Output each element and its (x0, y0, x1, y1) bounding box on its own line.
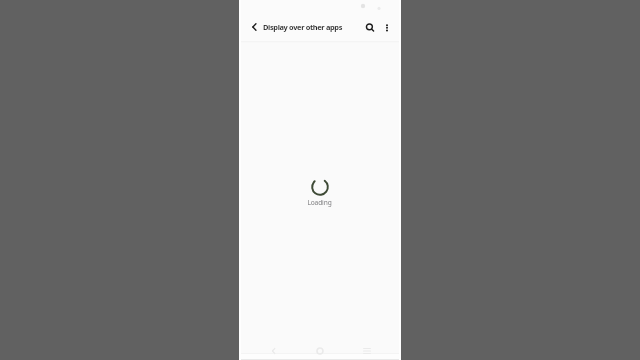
button[interactable]: Search (360, 17, 380, 37)
button[interactable]: Home (310, 341, 330, 360)
staticText: Loading (307, 198, 332, 207)
button[interactable]: Recent apps (357, 341, 377, 360)
button[interactable]: Back (264, 341, 284, 360)
button[interactable]: Navigate up (245, 17, 265, 37)
button[interactable]: More options (377, 17, 397, 37)
staticText: Display over other apps (263, 22, 343, 32)
